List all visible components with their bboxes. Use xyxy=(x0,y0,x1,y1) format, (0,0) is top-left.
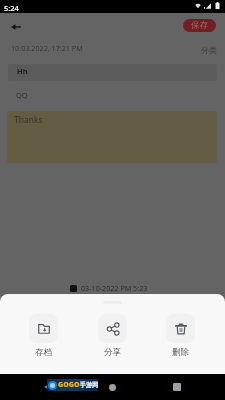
staticText: 10.03.2022, 17:21 PM xyxy=(11,43,83,53)
button[interactable]: 存档 xyxy=(29,314,58,358)
staticText: 删除 xyxy=(172,347,189,358)
staticText: GOGO xyxy=(58,380,80,390)
staticText: 手游网 xyxy=(80,381,98,389)
button[interactable]: 删除 xyxy=(166,314,195,358)
staticText: 分享 xyxy=(104,347,121,358)
staticText: QQ xyxy=(16,90,28,100)
button[interactable]: Back xyxy=(38,378,56,396)
button[interactable]: Home xyxy=(103,378,121,396)
button[interactable]: 分类 xyxy=(200,44,218,56)
staticText: Thanks xyxy=(14,114,43,126)
button[interactable]: 保存 xyxy=(183,19,216,32)
staticText: 5:24 xyxy=(4,3,19,13)
button[interactable]: Hh xyxy=(8,64,217,81)
staticText: 分类 xyxy=(201,45,217,55)
staticText: 保存 xyxy=(191,20,208,31)
button[interactable]: Recents xyxy=(168,378,186,396)
button[interactable]: 分享 xyxy=(98,314,127,358)
staticText: Hh xyxy=(17,66,28,76)
staticText: 03-10-2022 PM 5:23 xyxy=(81,283,148,293)
button[interactable]: Back xyxy=(5,16,26,37)
staticText: 存档 xyxy=(35,347,52,358)
